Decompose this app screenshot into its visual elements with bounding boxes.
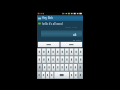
button[interactable]: Contact <box>37 22 83 25</box>
staticText: hello it's all good <box>42 22 63 25</box>
button[interactable]: ok <box>41 30 82 38</box>
staticText: Today 12:34 <box>65 26 78 29</box>
other: Suggestions <box>37 41 83 48</box>
staticText: Hey Bob <box>42 16 53 20</box>
staticText: ok <box>73 33 77 37</box>
staticText: Sent <box>76 39 81 42</box>
other: Status bar <box>37 12 83 15</box>
other: Contact <box>38 22 41 25</box>
button[interactable]: App icon <box>37 15 83 21</box>
button[interactable]: Keyboard <box>37 48 83 79</box>
other: App icon <box>38 17 41 20</box>
other: Delivered <box>73 40 75 42</box>
other: Keyboard <box>37 48 83 79</box>
